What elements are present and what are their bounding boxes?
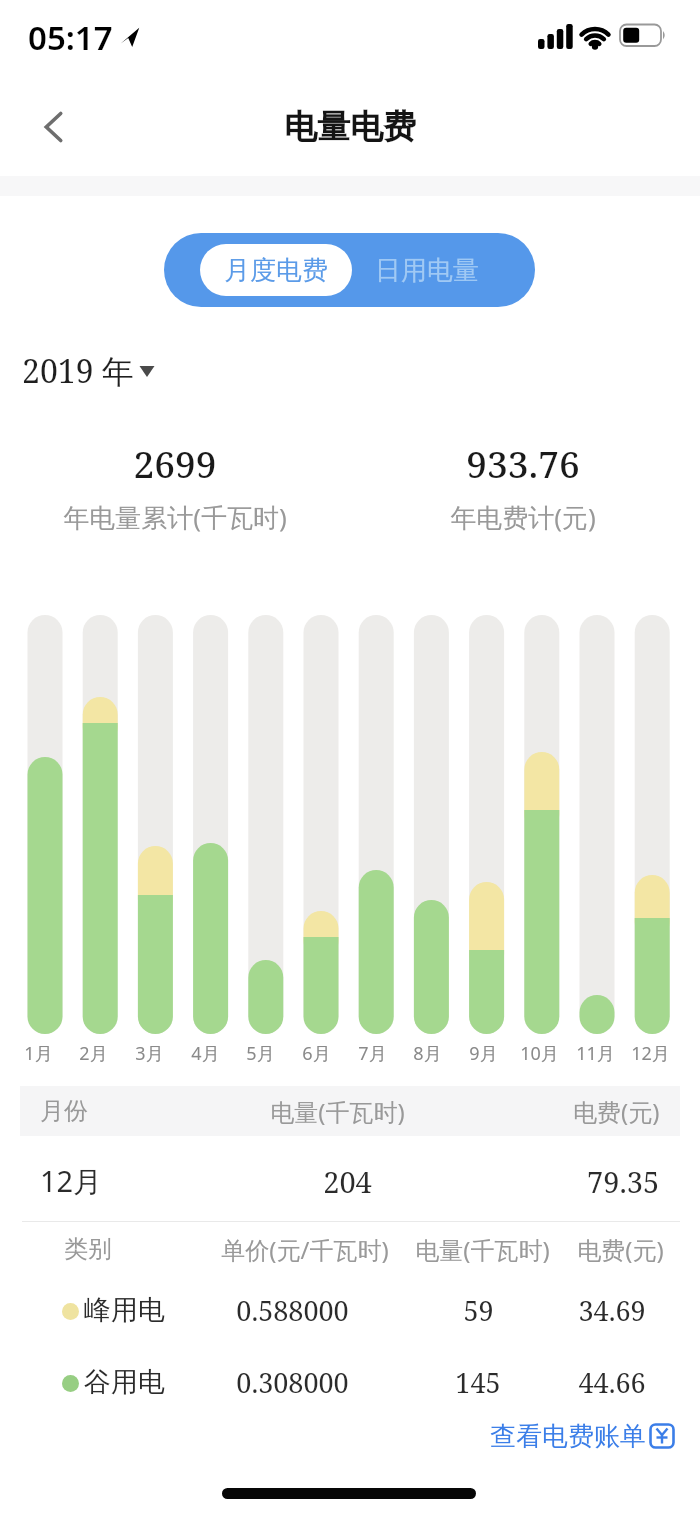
staticText: 1月 [24,1041,53,1066]
staticText: 10月 [520,1041,559,1066]
button[interactable] [20,1275,680,1345]
staticText: 峰用电 [84,1293,165,1327]
staticText: 日用电量 [375,254,479,287]
staticText: 月份 [40,1096,88,1126]
button[interactable]: 日用电量 [364,233,490,307]
button[interactable] [20,1140,680,1220]
staticText: 电费(元) [577,1233,664,1266]
staticText: 79.35 [587,1162,660,1201]
staticText: 7月 [358,1041,387,1066]
staticText: 8月 [413,1041,442,1066]
staticText: 12月 [631,1041,670,1066]
staticText: 谷用电 [84,1365,165,1399]
staticText: 2月 [79,1041,108,1066]
button[interactable]: 月度电费 [200,244,352,296]
button[interactable]: 2019 年 [22,346,155,396]
staticText: 类别 [64,1234,112,1264]
staticText: 年电量累计(千瓦时) [63,499,287,535]
staticText: 0.308000 [236,1364,349,1401]
button[interactable] [20,1345,680,1417]
staticText: 5月 [246,1041,275,1066]
staticText: 2019 年 [22,349,134,393]
staticText: 电量(千瓦时) [415,1233,550,1266]
staticText: 34.69 [578,1292,646,1329]
staticText: 12月 [40,1161,103,1201]
staticText: 电费(元) [573,1095,660,1128]
button[interactable]: 查看电费账单 [490,1415,675,1457]
staticText: 2699 [133,438,217,488]
staticText: 月度电费 [224,254,328,287]
staticText: 6月 [302,1041,331,1066]
staticText: 电量(千瓦时) [270,1095,405,1128]
staticText: 单价(元/千瓦时) [221,1233,389,1266]
staticText: 933.76 [466,438,580,488]
staticText: 年电费计(元) [450,499,596,535]
staticText: 145 [455,1364,501,1401]
staticText: 9月 [469,1041,498,1066]
staticText: 3月 [135,1041,164,1066]
button[interactable] [31,105,75,149]
staticText: 4月 [191,1041,220,1066]
staticText: 44.66 [578,1364,646,1401]
staticText: 05:17 [28,15,113,60]
staticText: 11月 [576,1041,615,1066]
staticText: 电量电费 [284,106,416,148]
staticText: 0.588000 [236,1292,349,1329]
staticText: 查看电费账单 [490,1420,646,1453]
staticText: 59 [463,1292,494,1329]
staticText: 204 [323,1162,372,1201]
